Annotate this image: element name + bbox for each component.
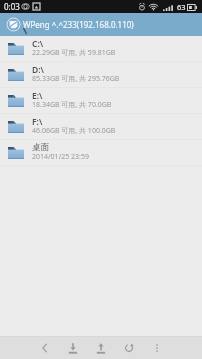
button[interactable]: Upload [87, 337, 115, 359]
staticText: 46.06GB 可用, 共 100.0GB [32, 126, 116, 136]
button[interactable]: Refresh [115, 337, 143, 359]
button[interactable]: More options [143, 337, 171, 359]
staticText: 85.33GB 可用, 共 295.76GB [32, 74, 120, 84]
staticText: F:\ [32, 116, 43, 128]
button[interactable]: 桌面 [0, 140, 202, 166]
staticText: D:\ [32, 64, 44, 76]
staticText: 0:03 [4, 1, 20, 12]
button[interactable]: C:\ [0, 36, 202, 62]
staticText: 18.34GB 可用, 共 70.0GB [32, 100, 112, 110]
button[interactable]: F:\ [0, 114, 202, 140]
button[interactable]: D:\ [0, 62, 202, 88]
staticText: 桌面 [32, 142, 49, 153]
button[interactable]: E:\ [0, 88, 202, 114]
staticText: WPeng ^.^233(192.168.0.110) [23, 19, 134, 30]
staticText: C:\ [32, 38, 44, 50]
button[interactable]: Download [59, 337, 87, 359]
staticText: 2014/01/25 23:59 [32, 152, 89, 162]
button[interactable]: Back [31, 337, 59, 359]
staticText: 22.29GB 可用, 共 59.81GB [32, 48, 116, 58]
staticText: E:\ [32, 90, 43, 102]
staticText: 63 [177, 2, 186, 12]
